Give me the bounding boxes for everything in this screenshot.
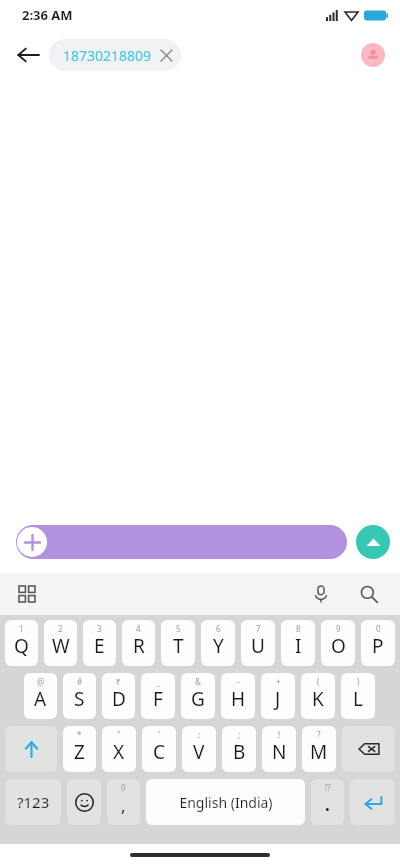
button[interactable]: 5 xyxy=(161,620,195,666)
button[interactable]: Contact xyxy=(361,43,385,67)
button[interactable]: _ xyxy=(141,673,175,719)
staticText: I xyxy=(295,633,302,659)
button[interactable]: ? xyxy=(302,726,336,772)
button[interactable]: ) xyxy=(341,673,375,719)
staticText: . xyxy=(325,793,330,816)
staticText: & xyxy=(195,676,201,687)
staticText: T xyxy=(173,633,184,659)
button[interactable]: Keyboard menu xyxy=(10,577,44,611)
staticText: @ xyxy=(37,676,45,687)
staticText: Q xyxy=(14,633,29,659)
button[interactable]: & xyxy=(181,673,215,719)
staticText: 8 xyxy=(296,623,301,634)
button[interactable]: ₹ xyxy=(102,673,135,719)
staticText: A xyxy=(34,686,47,712)
button[interactable]: Add attachment xyxy=(16,525,347,559)
staticText: - xyxy=(237,676,240,687)
button[interactable]: Shift xyxy=(5,726,57,772)
staticText: F xyxy=(153,686,163,712)
staticText: 6 xyxy=(216,623,221,634)
staticText: English (India) xyxy=(179,793,273,812)
button[interactable]: 9 xyxy=(321,620,355,666)
button[interactable]: + xyxy=(261,673,295,719)
button[interactable]: Emoji xyxy=(67,779,101,825)
staticText: P xyxy=(372,633,384,659)
button[interactable]: 0 xyxy=(107,779,140,825)
staticText: 2 xyxy=(58,623,63,634)
button[interactable]: 7 xyxy=(241,620,275,666)
staticText: U xyxy=(251,633,265,659)
staticText: 18730218809 xyxy=(63,46,152,65)
staticText: B xyxy=(233,739,246,765)
button[interactable]: Send xyxy=(356,525,390,559)
button[interactable]: ' xyxy=(142,726,176,772)
button[interactable]: @ xyxy=(24,673,57,719)
staticText: + xyxy=(276,676,281,687)
staticText: N xyxy=(272,739,287,765)
button[interactable]: ! xyxy=(262,726,296,772)
button[interactable]: 0 xyxy=(361,620,395,666)
staticText: " xyxy=(117,729,121,740)
button[interactable]: Voice input xyxy=(304,577,338,611)
staticText: L xyxy=(353,686,363,712)
staticText: O xyxy=(331,633,346,659)
staticText: V xyxy=(193,739,205,765)
button[interactable]: 3 xyxy=(83,620,116,666)
button[interactable]: Back xyxy=(8,35,48,75)
staticText: D xyxy=(112,686,126,712)
staticText: # xyxy=(77,676,83,687)
staticText: !? xyxy=(325,782,331,793)
staticText: J xyxy=(275,686,281,712)
button[interactable]: - xyxy=(221,673,255,719)
button[interactable]: " xyxy=(102,726,136,772)
staticText: 1 xyxy=(19,623,24,634)
staticText: C xyxy=(153,739,166,765)
staticText: 0 xyxy=(121,782,126,793)
staticText: * xyxy=(77,729,82,740)
button[interactable]: !? xyxy=(311,779,344,825)
button[interactable]: * xyxy=(63,726,96,772)
button[interactable]: Symbols xyxy=(5,779,61,825)
staticText: 5 xyxy=(176,623,181,634)
staticText: R xyxy=(133,633,145,659)
button[interactable]: Search xyxy=(352,577,386,611)
staticText: 2:36 AM xyxy=(22,6,73,24)
staticText: 4 xyxy=(136,623,141,634)
button[interactable]: 8 xyxy=(281,620,315,666)
staticText: K xyxy=(312,686,324,712)
staticText: H xyxy=(231,686,246,712)
staticText: ' xyxy=(158,729,160,740)
staticText: M xyxy=(310,739,328,765)
staticText: 0 xyxy=(376,623,381,634)
staticText: ( xyxy=(317,676,320,687)
button[interactable]: ; xyxy=(222,726,256,772)
button[interactable]: : xyxy=(182,726,216,772)
staticText: W xyxy=(52,633,70,659)
staticText: ? xyxy=(317,729,321,740)
button[interactable]: Backspace xyxy=(342,726,395,772)
staticText: 7 xyxy=(256,623,261,634)
staticText: ?123 xyxy=(17,792,50,812)
staticText: ; xyxy=(238,729,241,740)
button[interactable]: English (India) xyxy=(146,779,305,825)
staticText: E xyxy=(94,633,105,659)
button[interactable]: 1 xyxy=(5,620,38,666)
button[interactable]: 4 xyxy=(122,620,155,666)
button[interactable]: Add attachment xyxy=(17,527,47,557)
staticText: ₹ xyxy=(116,676,121,687)
staticText: Z xyxy=(74,739,85,765)
button[interactable]: 2 xyxy=(44,620,77,666)
button[interactable]: ( xyxy=(301,673,335,719)
staticText: Y xyxy=(213,633,224,659)
staticText: ) xyxy=(357,676,360,687)
button[interactable]: # xyxy=(63,673,96,719)
button[interactable]: Enter xyxy=(350,779,395,825)
staticText: 9 xyxy=(336,623,341,634)
staticText: , xyxy=(121,794,126,817)
staticText: : xyxy=(198,729,201,740)
staticText: _ xyxy=(156,676,160,687)
staticText: ! xyxy=(278,729,281,740)
button[interactable]: 6 xyxy=(201,620,235,666)
button[interactable]: 18730218809 xyxy=(49,39,181,71)
staticText: G xyxy=(191,686,205,712)
